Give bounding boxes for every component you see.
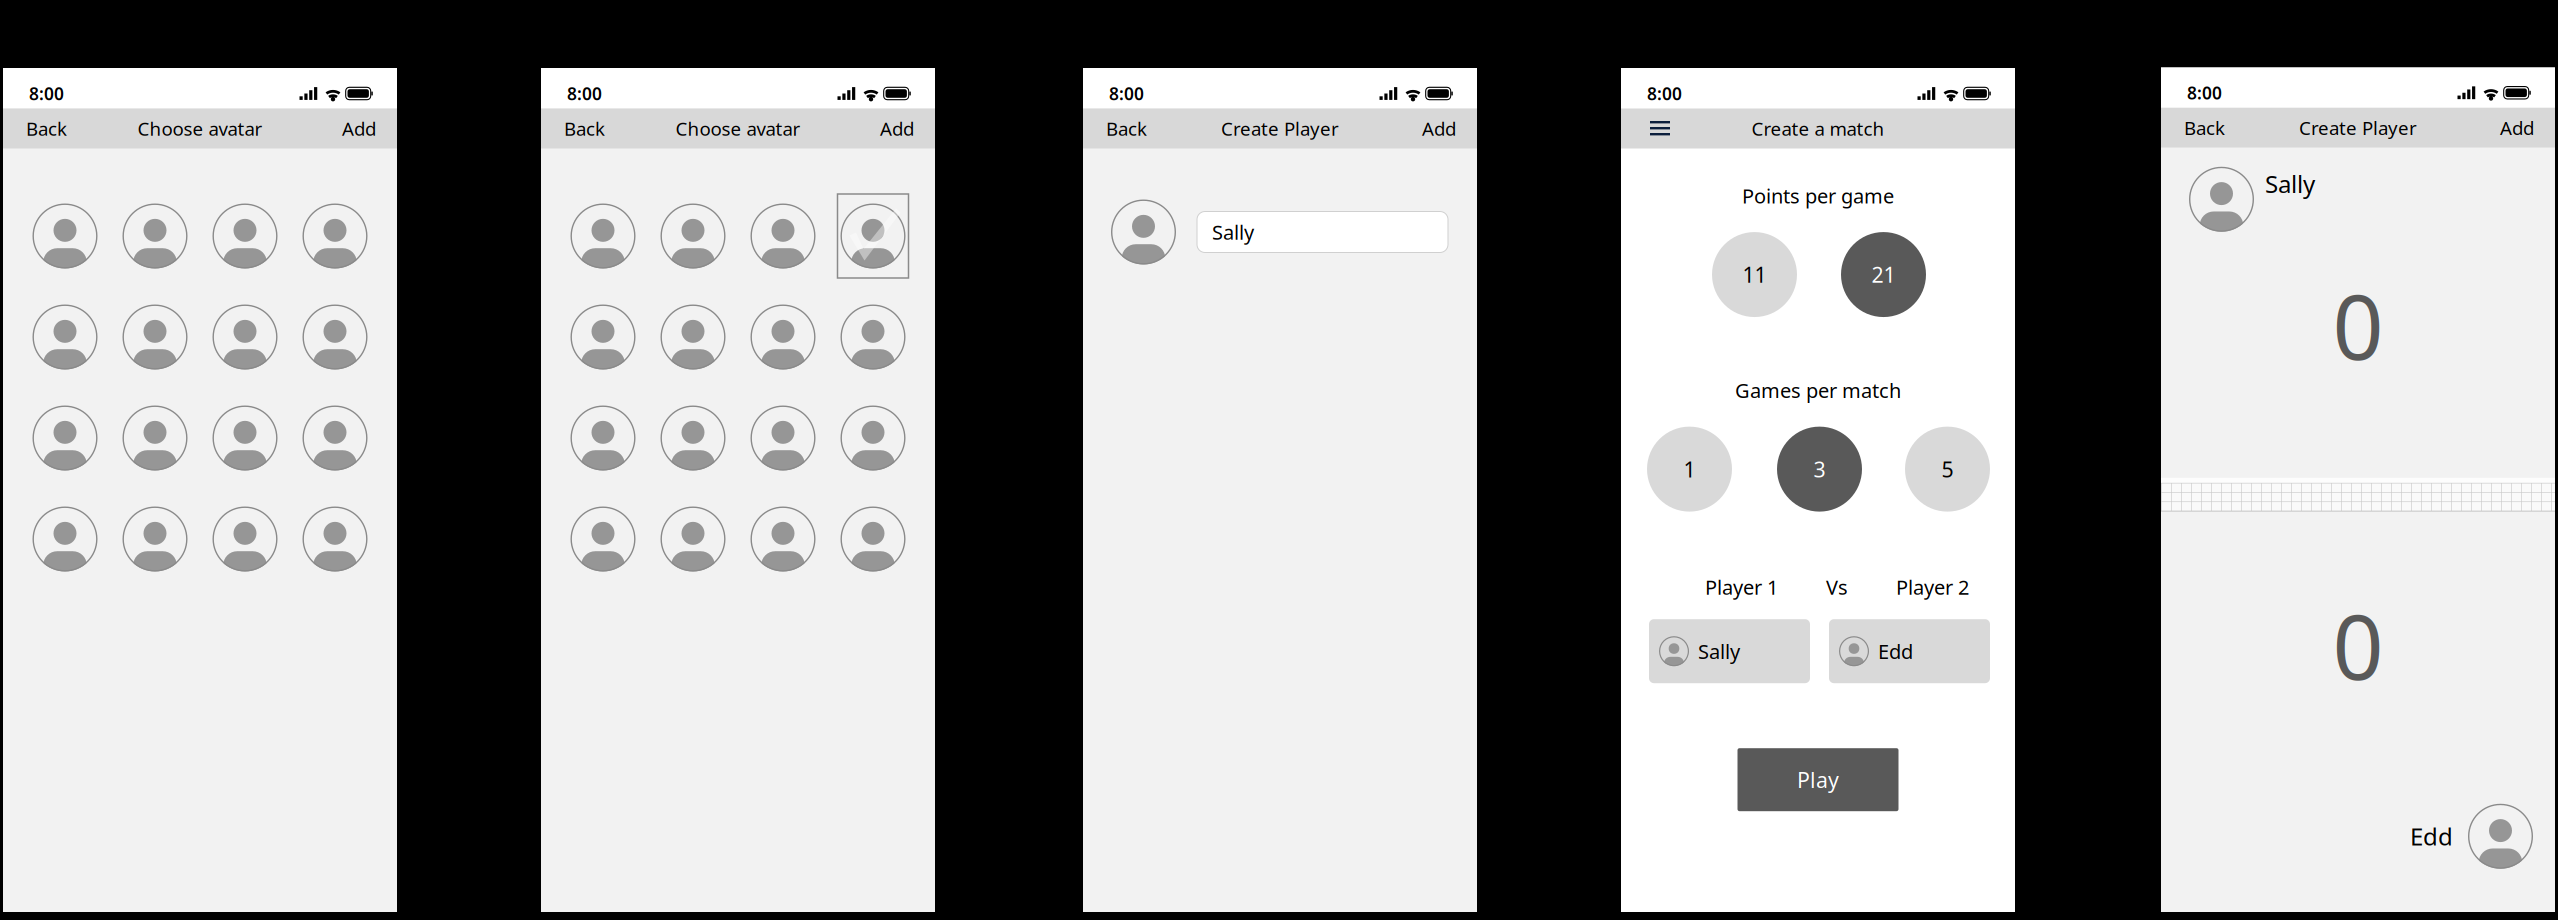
staticText: 8:00	[2187, 81, 2222, 104]
button[interactable]: Avatar 13	[570, 506, 635, 571]
staticText: Play	[1797, 765, 1839, 794]
button[interactable]: 5	[1905, 427, 1990, 512]
staticText: Back	[26, 116, 67, 141]
button[interactable]: Avatar 14	[660, 506, 725, 571]
staticText: Points per game	[1742, 182, 1894, 209]
button[interactable]: Avatar 10	[660, 405, 725, 470]
staticText: 1	[1683, 455, 1695, 483]
button[interactable]: Avatar 11	[212, 405, 277, 470]
staticText: 0	[2332, 266, 2383, 384]
button[interactable]: Back	[26, 112, 67, 145]
button[interactable]: Avatar 6	[122, 304, 187, 369]
button[interactable]: Avatar 16	[840, 506, 905, 571]
staticText: Sally	[1698, 638, 1740, 664]
button[interactable]: Sally score 0	[2161, 148, 2555, 478]
staticText: Create Player	[1221, 116, 1339, 141]
button[interactable]: Avatar 11	[750, 405, 815, 470]
staticText: Create Player	[2299, 115, 2417, 140]
button[interactable]: Sally	[1649, 619, 1810, 683]
staticText: Add	[1422, 116, 1456, 141]
staticText: Sally	[1212, 219, 1254, 245]
button[interactable]: 3	[1777, 427, 1862, 512]
button[interactable]: Edd	[1829, 619, 1990, 683]
button[interactable]: Back	[1106, 112, 1147, 145]
staticText: 3	[1813, 455, 1825, 483]
button[interactable]: Avatar 12	[302, 405, 367, 470]
button[interactable]: Avatar 5	[570, 304, 635, 369]
button[interactable]: Avatar 16	[302, 506, 367, 571]
staticText: Choose avatar	[675, 116, 800, 141]
staticText: Sally	[2265, 168, 2315, 200]
staticText: Add	[342, 116, 376, 141]
button[interactable]: Back	[2184, 111, 2225, 144]
button[interactable]: Avatar 3	[750, 203, 815, 268]
button[interactable]: Avatar 2	[660, 203, 725, 268]
staticText: Edd	[1878, 638, 1913, 664]
button[interactable]: Avatar 12	[840, 405, 905, 470]
button[interactable]: Avatar 15	[212, 506, 277, 571]
button[interactable]: 1	[1647, 427, 1732, 512]
button[interactable]: Play	[1737, 748, 1898, 811]
button[interactable]: Add	[1422, 112, 1456, 145]
button[interactable]: Add	[880, 112, 914, 145]
staticText: 8:00	[567, 82, 602, 105]
button[interactable]: Avatar 15	[750, 506, 815, 571]
button[interactable]: Avatar 13	[32, 506, 97, 571]
button[interactable]: 11	[1712, 232, 1797, 317]
button[interactable]: Avatar 1	[570, 203, 635, 268]
staticText: 8:00	[29, 82, 64, 105]
button[interactable]: Avatar 1	[32, 203, 97, 268]
button[interactable]: Avatar 5	[32, 304, 97, 369]
button[interactable]: Avatar 9	[32, 405, 97, 470]
button[interactable]: Choose avatar	[1111, 199, 1176, 264]
button[interactable]: Sally	[1197, 211, 1448, 252]
button[interactable]: Edd score 0	[2161, 512, 2555, 905]
button[interactable]: Avatar 14	[122, 506, 187, 571]
staticText: 21	[1871, 260, 1895, 289]
staticText: 0	[2332, 586, 2383, 704]
staticText: Add	[880, 116, 914, 141]
staticText: Games per match	[1735, 377, 1901, 404]
staticText: Back	[2184, 115, 2225, 140]
button[interactable]: Avatar 8	[840, 304, 905, 369]
staticText: 8:00	[1647, 82, 1682, 105]
button[interactable]: Menu	[1644, 115, 1676, 142]
button[interactable]: Avatar 8	[302, 304, 367, 369]
staticText: Vs	[1826, 574, 1848, 600]
button[interactable]: Avatar 7	[750, 304, 815, 369]
button[interactable]: Avatar 3	[212, 203, 277, 268]
staticText: Back	[1106, 116, 1147, 141]
staticText: Player 2	[1896, 574, 1969, 600]
staticText: Player 1	[1705, 574, 1778, 600]
staticText: 11	[1742, 260, 1766, 289]
button[interactable]: 21	[1841, 232, 1926, 317]
button[interactable]: Add	[342, 112, 376, 145]
staticText: Add	[2500, 115, 2534, 140]
button[interactable]: Avatar 2	[122, 203, 187, 268]
button[interactable]: Avatar 10	[122, 405, 187, 470]
button[interactable]: Back	[564, 112, 605, 145]
staticText: 8:00	[1109, 82, 1144, 105]
button[interactable]: Add	[2500, 111, 2534, 144]
button[interactable]: Avatar 7	[212, 304, 277, 369]
staticText: Choose avatar	[137, 116, 262, 141]
staticText: Back	[564, 116, 605, 141]
button[interactable]: Avatar 9	[570, 405, 635, 470]
button[interactable]: Avatar 6	[660, 304, 725, 369]
staticText: Create a match	[1751, 116, 1884, 141]
button[interactable]: Avatar 4	[840, 203, 905, 268]
button[interactable]: Avatar 4	[302, 203, 367, 268]
staticText: Edd	[2410, 820, 2453, 852]
staticText: 5	[1941, 455, 1953, 483]
